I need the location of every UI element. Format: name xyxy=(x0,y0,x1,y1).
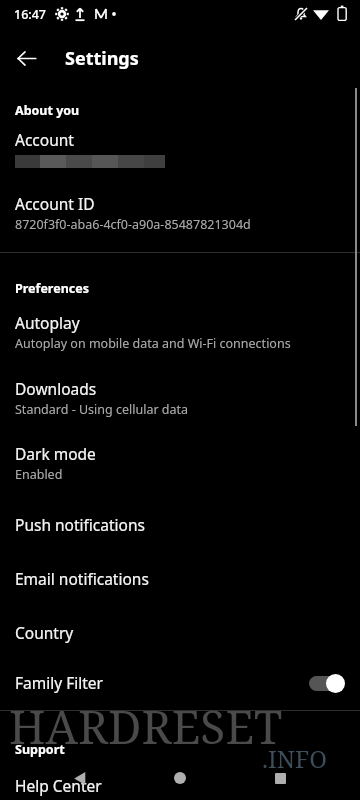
button[interactable]: Recent apps xyxy=(260,758,300,798)
staticText: Autoplay xyxy=(15,312,80,333)
button[interactable]: Dark mode xyxy=(0,442,360,484)
button[interactable]: Email notifications xyxy=(0,566,360,591)
staticText: Support xyxy=(15,741,65,758)
staticText: Dark mode xyxy=(15,443,96,464)
staticText: Downloads xyxy=(15,378,97,399)
staticText: Email notifications xyxy=(15,568,149,589)
button[interactable]: Downloads xyxy=(0,377,360,419)
staticText: Enabled xyxy=(15,466,63,483)
button[interactable]: Autoplay xyxy=(0,311,360,353)
button[interactable]: Back xyxy=(60,758,100,798)
staticText: Preferences xyxy=(15,280,89,297)
staticText: 16:47 xyxy=(14,6,47,23)
button[interactable]: Account xyxy=(0,129,360,168)
staticText: Push notifications xyxy=(15,514,145,535)
staticText: Settings xyxy=(65,46,139,71)
staticText: HARDRESET xyxy=(9,695,283,758)
button[interactable]: Push notifications xyxy=(0,512,360,537)
staticText: Family Filter xyxy=(15,672,103,693)
staticText: .INFO xyxy=(262,742,328,775)
button[interactable]: Family Filter xyxy=(0,669,360,696)
staticText: Account ID xyxy=(15,193,95,214)
staticText: Country xyxy=(15,622,74,643)
button[interactable]: Back xyxy=(7,39,45,77)
staticText: Autoplay on mobile data and Wi-Fi connec… xyxy=(15,335,291,352)
button[interactable]: Family Filter toggle xyxy=(307,673,345,693)
staticText: Account xyxy=(15,129,74,150)
staticText: 8720f3f0-aba6-4cf0-a90a-85487821304d xyxy=(15,216,251,233)
button[interactable]: Help Center xyxy=(0,773,360,798)
staticText: Standard - Using cellular data xyxy=(15,401,189,418)
staticText: Help Center xyxy=(15,775,102,796)
button[interactable]: Country xyxy=(0,620,360,645)
staticText: About you xyxy=(15,102,80,119)
button[interactable]: Account ID xyxy=(0,192,360,234)
button[interactable]: Home xyxy=(160,758,200,798)
